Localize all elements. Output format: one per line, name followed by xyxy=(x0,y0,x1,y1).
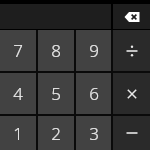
button[interactable]: Divide xyxy=(113,30,150,71)
button[interactable]: 3 xyxy=(76,116,111,150)
button[interactable]: Subtract xyxy=(113,116,150,150)
button[interactable]: Backspace xyxy=(113,4,150,29)
staticText: 1 xyxy=(13,122,23,145)
staticText: 3 xyxy=(89,122,99,145)
button[interactable]: Multiply xyxy=(113,73,150,114)
staticText: 9 xyxy=(89,39,99,62)
button[interactable]: 4 xyxy=(0,73,36,114)
button[interactable]: 9 xyxy=(76,30,111,71)
button[interactable]: 6 xyxy=(76,73,111,114)
staticText: 5 xyxy=(51,82,61,105)
button[interactable]: 7 xyxy=(0,30,36,71)
button[interactable]: 1 xyxy=(0,116,36,150)
staticText: 4 xyxy=(13,82,23,105)
staticText: 7 xyxy=(13,39,23,62)
staticText: 2 xyxy=(51,122,61,145)
staticText: 6 xyxy=(89,82,99,105)
button[interactable]: 8 xyxy=(38,30,74,71)
button[interactable]: 2 xyxy=(38,116,74,150)
staticText: 8 xyxy=(51,39,61,62)
button[interactable]: 5 xyxy=(38,73,74,114)
